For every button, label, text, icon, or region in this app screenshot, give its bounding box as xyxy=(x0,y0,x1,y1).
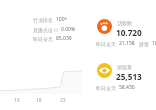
staticText: 21,158 xyxy=(119,40,135,47)
staticText: 0.00% xyxy=(61,26,76,33)
staticText: 浏览量 xyxy=(117,64,132,70)
staticText: 行业排名 xyxy=(33,17,53,23)
staticText: 10.720 xyxy=(116,27,142,38)
staticText: 18 xyxy=(36,97,42,104)
staticText: 访客数 xyxy=(117,20,132,26)
staticText: 23 xyxy=(60,97,66,104)
staticText: 昨日全天 xyxy=(33,36,53,42)
staticText: 100+ xyxy=(56,16,68,23)
staticText: 100 xyxy=(152,40,156,47)
staticText: 25,513 xyxy=(116,71,142,82)
staticText: 58,430 xyxy=(119,84,135,91)
other: 访客数 xyxy=(97,19,112,34)
staticText: 昨日全天 xyxy=(96,85,116,91)
staticText: 直播点击 xyxy=(33,27,53,33)
staticText: 游客 xyxy=(139,41,149,47)
staticText: 85,039 xyxy=(56,35,72,42)
button[interactable]: 浏览量 xyxy=(96,62,156,92)
button[interactable]: 访客数 xyxy=(96,18,156,48)
staticText: 15 xyxy=(14,97,20,104)
other: 浏览量 xyxy=(97,63,112,78)
staticText: 昨日全天 xyxy=(96,41,116,47)
